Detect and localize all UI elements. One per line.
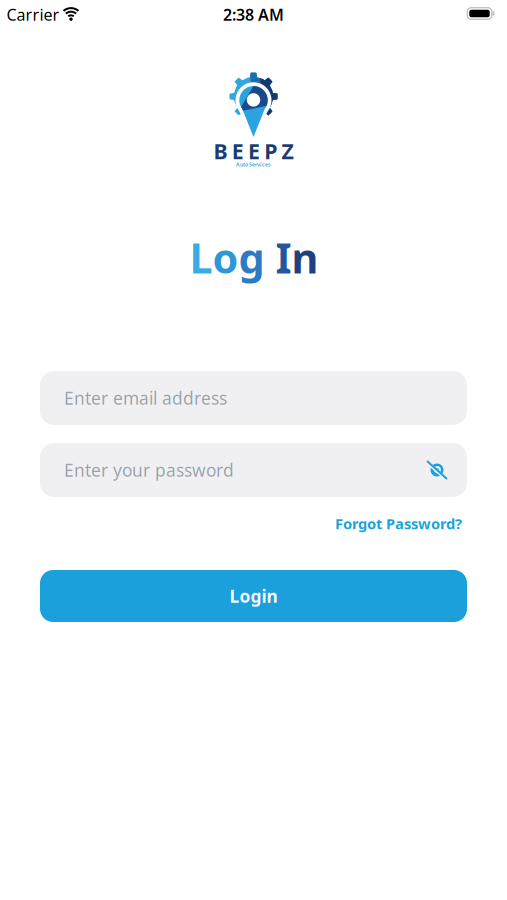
staticText: r (255, 161, 257, 168)
staticText (248, 161, 249, 168)
staticText: A (236, 161, 240, 168)
staticText: E (248, 137, 260, 165)
staticText: Carrier (6, 4, 59, 25)
staticText: S (249, 161, 252, 168)
button[interactable]: Enter your password (40, 443, 467, 497)
staticText: P (264, 137, 277, 165)
button[interactable]: Show password (426, 461, 448, 479)
staticText: n (291, 230, 318, 285)
staticText: v (257, 161, 260, 168)
staticText: s (268, 161, 271, 168)
staticText: Forgot Password? (335, 514, 462, 533)
staticText: E (232, 137, 244, 165)
staticText: i (260, 161, 262, 168)
staticText: u (240, 161, 243, 168)
button[interactable]: Enter email address (40, 371, 467, 425)
staticText: 2:38 AM (223, 4, 284, 25)
staticText: Z (281, 137, 293, 165)
staticText: o (212, 230, 238, 285)
staticText: t (243, 161, 245, 168)
staticText: Enter email address (64, 386, 227, 409)
staticText: e (265, 161, 268, 168)
staticText: g (238, 230, 264, 285)
staticText: Enter your password (64, 458, 234, 481)
button[interactable]: Forgot Password? (335, 514, 462, 533)
staticText: c (262, 161, 265, 168)
staticText: L (189, 230, 212, 285)
staticText: B (214, 137, 228, 165)
staticText: Login (229, 584, 277, 607)
staticText: I (275, 230, 291, 285)
staticText: o (245, 161, 248, 168)
button[interactable]: Login (40, 570, 467, 622)
staticText: e (252, 161, 255, 168)
